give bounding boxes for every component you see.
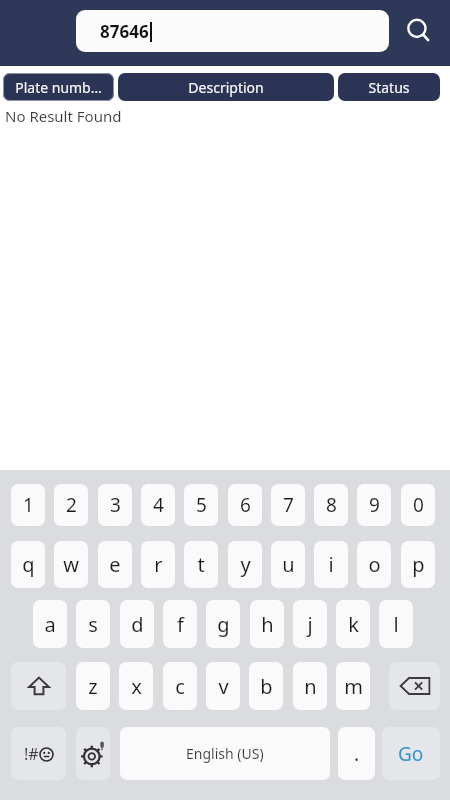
staticText: b bbox=[260, 673, 273, 700]
button[interactable]: r bbox=[141, 541, 175, 588]
staticText: Go bbox=[398, 741, 424, 767]
button[interactable]: 8 bbox=[314, 484, 348, 526]
button[interactable]: p bbox=[401, 541, 435, 588]
staticText: 0 bbox=[413, 492, 424, 518]
button[interactable]: 9 bbox=[357, 484, 391, 526]
button[interactable]: x bbox=[119, 662, 153, 710]
button[interactable]: Description bbox=[118, 73, 334, 101]
button[interactable]: d bbox=[120, 600, 154, 648]
staticText: Plate numb… bbox=[15, 78, 102, 97]
button[interactable]: 6 bbox=[228, 484, 262, 526]
button[interactable]: 7 bbox=[271, 484, 305, 526]
button[interactable]: m bbox=[336, 662, 370, 710]
button[interactable]: o bbox=[357, 541, 391, 588]
button[interactable]: f bbox=[163, 600, 197, 648]
staticText: c bbox=[175, 673, 185, 700]
staticText: z bbox=[88, 673, 98, 700]
button[interactable]: Search bbox=[400, 12, 438, 50]
button[interactable]: . bbox=[338, 727, 375, 780]
staticText: f bbox=[177, 611, 184, 638]
button[interactable]: 2 bbox=[54, 484, 88, 526]
staticText: Description bbox=[188, 78, 264, 97]
staticText: o bbox=[368, 551, 381, 578]
staticText: 9 bbox=[369, 492, 380, 518]
button[interactable]: z bbox=[76, 662, 110, 710]
staticText: k bbox=[348, 611, 359, 638]
button[interactable]: s bbox=[76, 600, 110, 648]
button[interactable]: e bbox=[98, 541, 132, 588]
button[interactable]: g bbox=[206, 600, 240, 648]
button[interactable]: w bbox=[54, 541, 88, 588]
button[interactable]: 4 bbox=[141, 484, 175, 526]
button[interactable]: i bbox=[314, 541, 348, 588]
staticText: m bbox=[344, 673, 363, 700]
staticText: i bbox=[328, 551, 334, 578]
button[interactable]: 87646 bbox=[76, 10, 389, 52]
staticText: t bbox=[197, 551, 205, 578]
staticText: u bbox=[282, 551, 295, 578]
button[interactable]: a bbox=[33, 600, 67, 648]
staticText: English (US) bbox=[186, 744, 264, 763]
button[interactable]: b bbox=[249, 662, 283, 710]
staticText: e bbox=[109, 551, 121, 578]
button[interactable]: 3 bbox=[98, 484, 132, 526]
button[interactable]: y bbox=[228, 541, 262, 588]
staticText: q bbox=[22, 551, 35, 578]
staticText: j bbox=[307, 611, 313, 638]
staticText: x bbox=[131, 673, 142, 700]
button[interactable]: Go bbox=[382, 727, 440, 780]
staticText: 87646 bbox=[100, 20, 149, 43]
button[interactable]: v bbox=[206, 662, 240, 710]
staticText: 4 bbox=[153, 492, 164, 518]
staticText: r bbox=[154, 551, 163, 578]
staticText: h bbox=[261, 611, 274, 638]
staticText: !# bbox=[24, 743, 39, 765]
button[interactable]: 0 bbox=[401, 484, 435, 526]
staticText: 1 bbox=[23, 492, 34, 518]
staticText: w bbox=[63, 551, 79, 578]
button[interactable]: 1 bbox=[11, 484, 45, 526]
staticText: l bbox=[393, 611, 399, 638]
staticText: v bbox=[218, 673, 229, 700]
button[interactable]: k bbox=[336, 600, 370, 648]
staticText: p bbox=[412, 551, 425, 578]
staticText: g bbox=[217, 611, 230, 638]
staticText: 7 bbox=[283, 492, 294, 518]
button[interactable]: j bbox=[293, 600, 327, 648]
button[interactable]: !# bbox=[11, 727, 66, 780]
button[interactable]: Status bbox=[338, 73, 440, 101]
button[interactable]: t bbox=[184, 541, 218, 588]
staticText: y bbox=[240, 551, 251, 578]
staticText: a bbox=[44, 611, 56, 638]
staticText: d bbox=[131, 611, 144, 638]
button[interactable]: l bbox=[379, 600, 413, 648]
staticText: 2 bbox=[66, 492, 77, 518]
button[interactable]: q bbox=[11, 541, 45, 588]
button[interactable]: h bbox=[250, 600, 284, 648]
button[interactable]: Backspace bbox=[389, 662, 440, 710]
staticText: 6 bbox=[240, 492, 251, 518]
staticText: n bbox=[304, 673, 317, 700]
staticText: 3 bbox=[110, 492, 121, 518]
button[interactable]: Settings bbox=[76, 727, 110, 780]
button[interactable]: n bbox=[293, 662, 327, 710]
staticText: 8 bbox=[326, 492, 337, 518]
staticText: 5 bbox=[196, 492, 207, 518]
button[interactable]: 5 bbox=[184, 484, 218, 526]
button[interactable]: c bbox=[163, 662, 197, 710]
button[interactable]: Shift bbox=[11, 662, 66, 710]
staticText: No Result Found bbox=[5, 106, 122, 126]
staticText: Status bbox=[368, 78, 410, 97]
staticText: . bbox=[354, 741, 360, 767]
button[interactable]: Plate numb… bbox=[3, 73, 114, 101]
button[interactable]: u bbox=[271, 541, 305, 588]
button[interactable]: English (US) bbox=[120, 727, 330, 780]
staticText: s bbox=[88, 611, 98, 638]
